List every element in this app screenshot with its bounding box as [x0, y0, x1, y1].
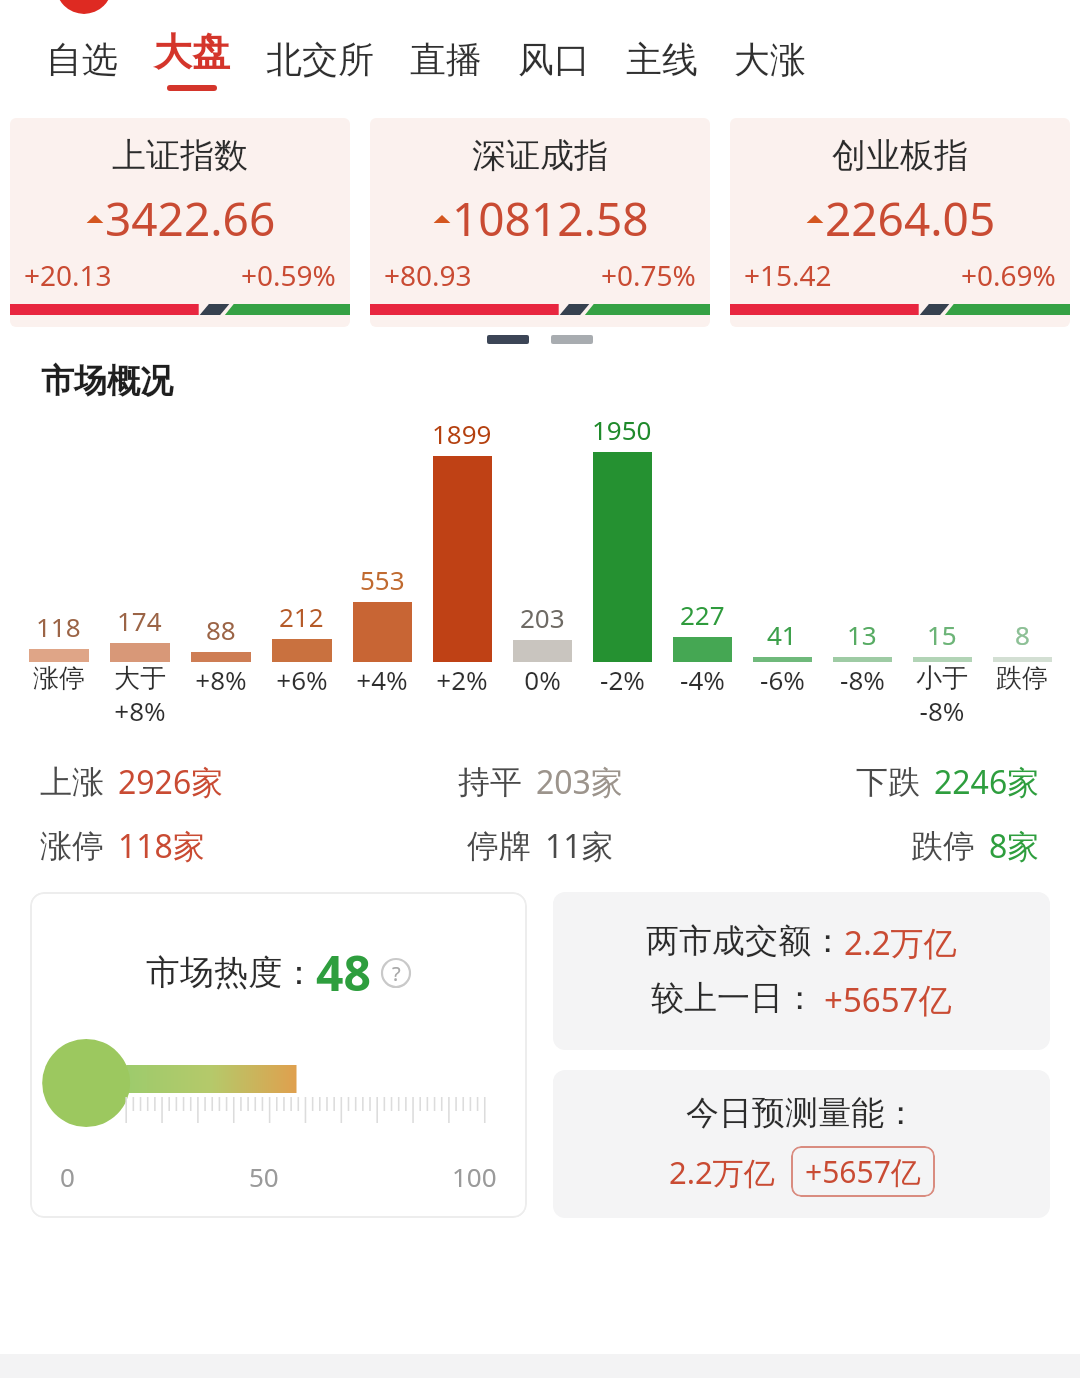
- staticText: 持平: [458, 762, 522, 802]
- button[interactable]: 自选: [28, 16, 136, 102]
- staticText: 8: [1015, 617, 1030, 652]
- staticText: 主线: [626, 37, 698, 82]
- button[interactable]: 大盘: [136, 16, 248, 102]
- staticText: 市场热度：: [146, 951, 316, 994]
- staticText: +0.59%: [241, 256, 336, 294]
- staticText: 11家: [545, 824, 614, 868]
- staticText: 2264.05: [825, 187, 996, 250]
- staticText: 小于 -8%: [916, 662, 968, 729]
- staticText: 100: [452, 1159, 497, 1194]
- staticText: 1899: [432, 416, 492, 451]
- staticText: 大涨: [734, 37, 806, 82]
- button[interactable]: 大涨: [716, 16, 824, 102]
- staticText: +20.13: [24, 256, 112, 294]
- button[interactable]: 今日预测量能：: [553, 1070, 1050, 1218]
- staticText: +0.69%: [961, 256, 1056, 294]
- staticText: 深证成指: [472, 134, 608, 177]
- staticText: 涨停: [40, 826, 104, 866]
- staticText: 41: [767, 617, 797, 652]
- button[interactable]: 北交所: [248, 16, 392, 102]
- staticText: +4%: [356, 662, 408, 697]
- staticText: 风口: [518, 37, 590, 82]
- staticText: 2.2万亿: [669, 1151, 775, 1193]
- staticText: 203: [520, 600, 565, 635]
- staticText: -8%: [840, 662, 885, 697]
- button[interactable]: 上证指数: [10, 118, 350, 327]
- staticText: 118: [36, 609, 81, 644]
- staticText: 大于 +8%: [114, 662, 166, 729]
- button[interactable]: 市场热度：: [30, 892, 527, 1218]
- staticText: 212: [279, 599, 324, 634]
- staticText: 1950: [592, 412, 652, 447]
- staticText: 北交所: [266, 37, 374, 82]
- button[interactable]: 主线: [608, 16, 716, 102]
- button[interactable]: 创业板指: [730, 118, 1070, 327]
- staticText: 直播: [410, 37, 482, 82]
- staticText: 50: [249, 1159, 279, 1194]
- staticText: 上涨: [40, 762, 104, 802]
- staticText: +15.42: [744, 256, 832, 294]
- button[interactable]: 深证成指: [370, 118, 710, 327]
- staticText: 553: [360, 562, 405, 597]
- staticText: 两市成交额：: [646, 920, 844, 962]
- staticText: 跌停: [911, 826, 975, 866]
- staticText: 较上一日：: [651, 977, 816, 1019]
- staticText: 今日预测量能：: [686, 1092, 917, 1134]
- staticText: +5657亿: [805, 1151, 921, 1192]
- staticText: 2926家: [118, 760, 224, 804]
- staticText: 88: [206, 612, 236, 647]
- staticText: +2%: [436, 662, 488, 697]
- staticText: 2.2万亿: [844, 920, 957, 965]
- button[interactable]: 帮助: [381, 958, 411, 988]
- staticText: 10812.58: [452, 187, 649, 250]
- staticText: -2%: [600, 662, 645, 697]
- staticText: 8家: [989, 824, 1040, 868]
- staticText: +8%: [195, 662, 247, 697]
- staticText: 0%: [524, 662, 561, 697]
- staticText: 0: [60, 1159, 75, 1194]
- staticText: 118家: [118, 824, 205, 868]
- button[interactable]: 两市成交额：: [553, 892, 1050, 1050]
- staticText: +6%: [276, 662, 328, 697]
- staticText: -4%: [680, 662, 725, 697]
- staticText: 上证指数: [112, 134, 248, 177]
- staticText: 跌停: [996, 662, 1048, 695]
- staticText: +5657亿: [824, 977, 952, 1022]
- staticText: 174: [117, 603, 162, 638]
- staticText: +80.93: [384, 256, 472, 294]
- button[interactable]: 直播: [392, 16, 500, 102]
- staticText: 涨停: [33, 662, 85, 695]
- staticText: 大盘: [154, 28, 230, 76]
- staticText: -6%: [760, 662, 805, 697]
- staticText: 13: [847, 617, 877, 652]
- staticText: 15: [927, 617, 957, 652]
- staticText: 自选: [46, 37, 118, 82]
- staticText: +0.75%: [601, 256, 696, 294]
- staticText: ?: [392, 960, 401, 987]
- staticText: 48: [316, 940, 371, 1005]
- staticText: 下跌: [856, 762, 920, 802]
- staticText: 停牌: [467, 826, 531, 866]
- staticText: 2246家: [934, 760, 1040, 804]
- staticText: 3422.66: [105, 187, 276, 250]
- staticText: 203家: [536, 760, 623, 804]
- staticText: 227: [680, 597, 725, 632]
- button[interactable]: 风口: [500, 16, 608, 102]
- staticText: 市场概况: [41, 360, 173, 402]
- staticText: 创业板指: [832, 134, 968, 177]
